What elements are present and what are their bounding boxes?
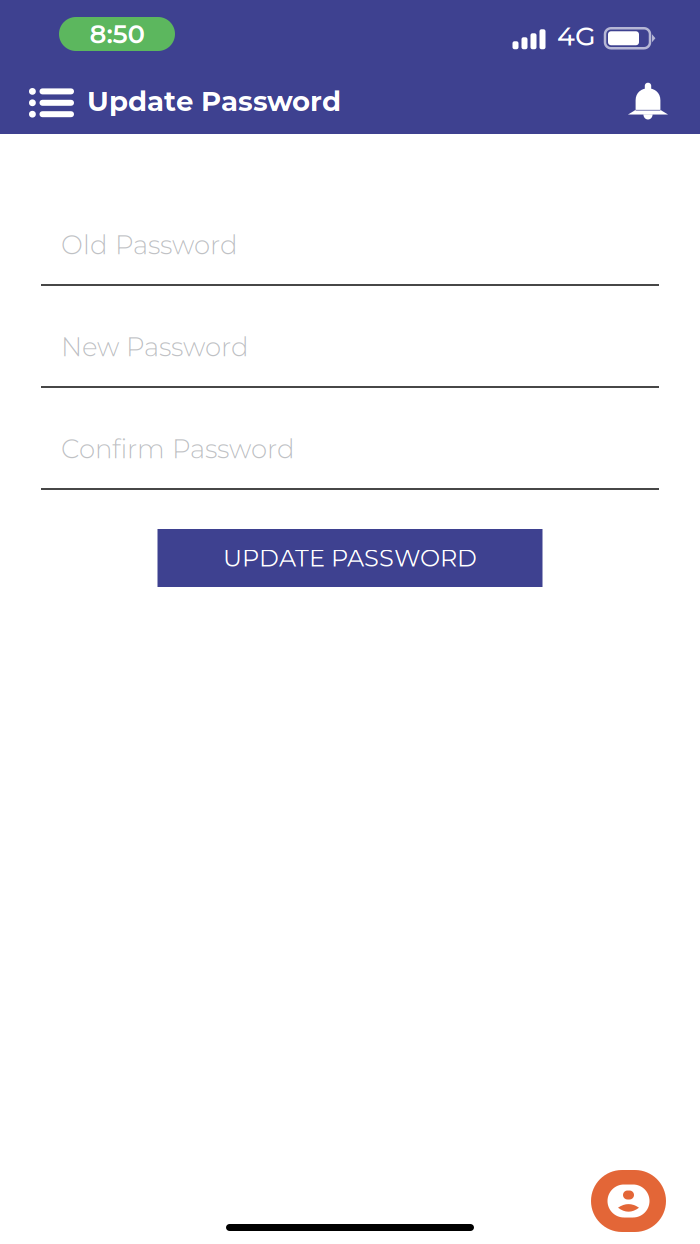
staticText: New Password xyxy=(61,331,249,363)
button[interactable]: Profile xyxy=(591,1170,666,1232)
staticText: Confirm Password xyxy=(61,433,295,465)
button[interactable]: Menu xyxy=(17,72,87,130)
button[interactable]: Notifications xyxy=(614,71,678,130)
staticText: 8:50 xyxy=(89,18,144,50)
staticText: 4G xyxy=(557,20,596,52)
staticText: Update Password xyxy=(87,84,341,118)
button[interactable]: UPDATE PASSWORD xyxy=(157,529,542,587)
staticText: UPDATE PASSWORD xyxy=(223,543,477,573)
staticText: Old Password xyxy=(61,229,238,261)
